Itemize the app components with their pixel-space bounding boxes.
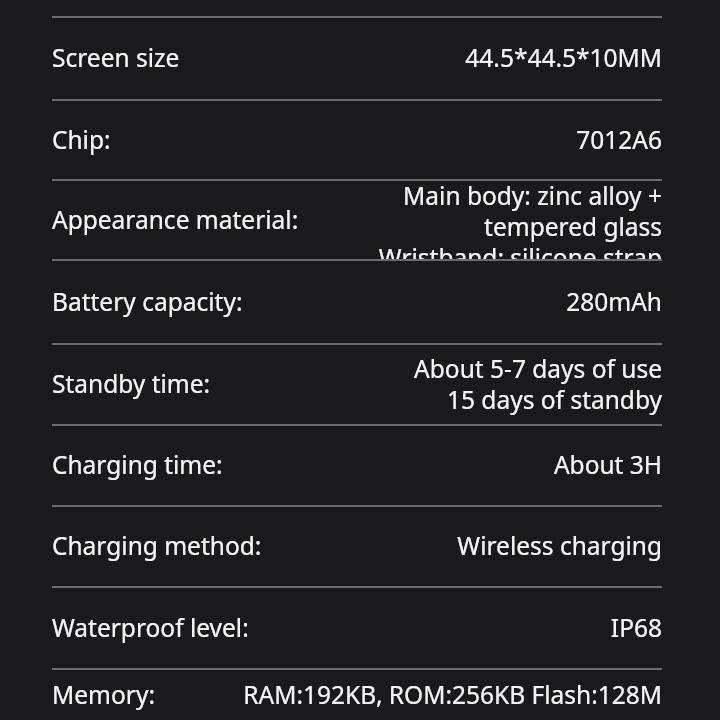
button[interactable]: Battery capacity: (52, 261, 662, 343)
button[interactable]: Chip: (52, 101, 662, 179)
staticText: Wireless charging (270, 531, 662, 562)
staticText: About 3H (231, 450, 662, 481)
button[interactable]: Charging method: (52, 507, 662, 586)
staticText: Main body: zinc alloy + tempered glass W… (307, 181, 662, 259)
button[interactable]: Appearance material: (52, 181, 662, 259)
staticText: About 5-7 days of use 15 days of standby (219, 354, 662, 416)
staticText: Screen size (52, 43, 180, 74)
staticText: Appearance material: (52, 205, 299, 236)
button[interactable]: Waterproof level: (52, 588, 662, 668)
staticText: Standby time: (52, 369, 211, 400)
staticText: Memory: (52, 680, 155, 711)
button[interactable]: Charging time: (52, 426, 662, 505)
staticText: IP68 (257, 613, 662, 644)
staticText: RAM:192KB, ROM:256KB Flash:128M (163, 680, 662, 711)
button[interactable]: Screen size (52, 18, 662, 99)
staticText: Waterproof level: (52, 613, 249, 644)
staticText: Charging time: (52, 450, 223, 481)
staticText: Battery capacity: (52, 287, 243, 318)
staticText: Chip: (52, 125, 111, 156)
button[interactable]: Memory: (52, 670, 662, 720)
staticText: 44.5*44.5*10MM (188, 43, 662, 74)
button[interactable]: Standby time: (52, 345, 662, 424)
staticText: Charging method: (52, 531, 262, 562)
staticText: 7012A6 (119, 125, 662, 156)
staticText: 280mAh (251, 287, 662, 318)
